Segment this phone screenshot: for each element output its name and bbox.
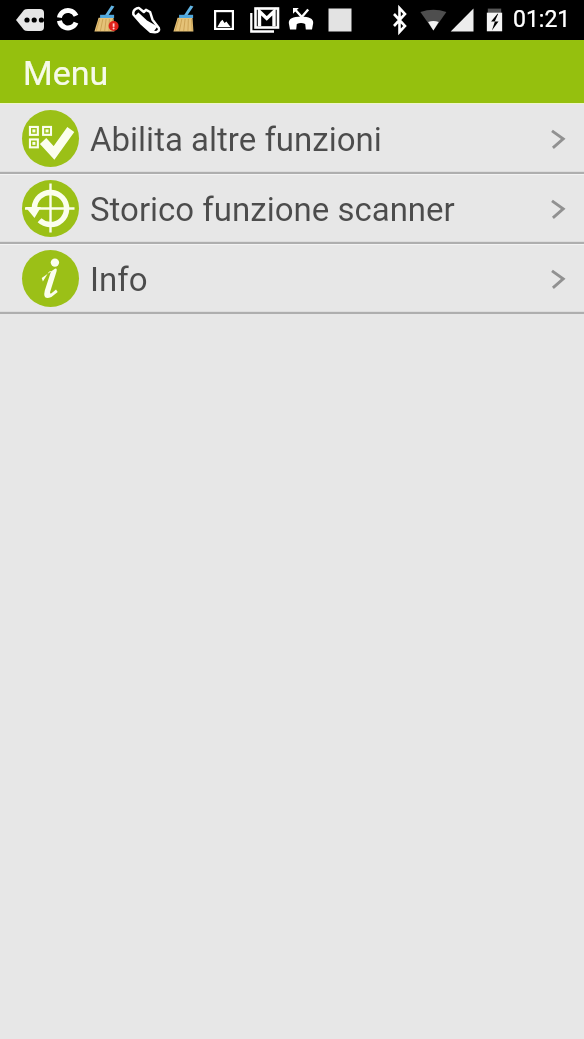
- staticText: 01:21: [513, 6, 571, 33]
- button[interactable]: Storico funzione scanner: [0, 174, 584, 241]
- staticText: Storico funzione scanner: [90, 190, 455, 229]
- button[interactable]: Abilita altre funzioni: [0, 104, 584, 171]
- other: Open Info: [535, 256, 579, 300]
- staticText: Abilita altre funzioni: [90, 120, 382, 159]
- staticText: Menu: [23, 53, 109, 93]
- other: Open Abilita altre funzioni: [535, 116, 579, 160]
- button[interactable]: Info: [0, 244, 584, 311]
- staticText: Info: [90, 260, 148, 299]
- other: Open Storico funzione scanner: [535, 186, 579, 230]
